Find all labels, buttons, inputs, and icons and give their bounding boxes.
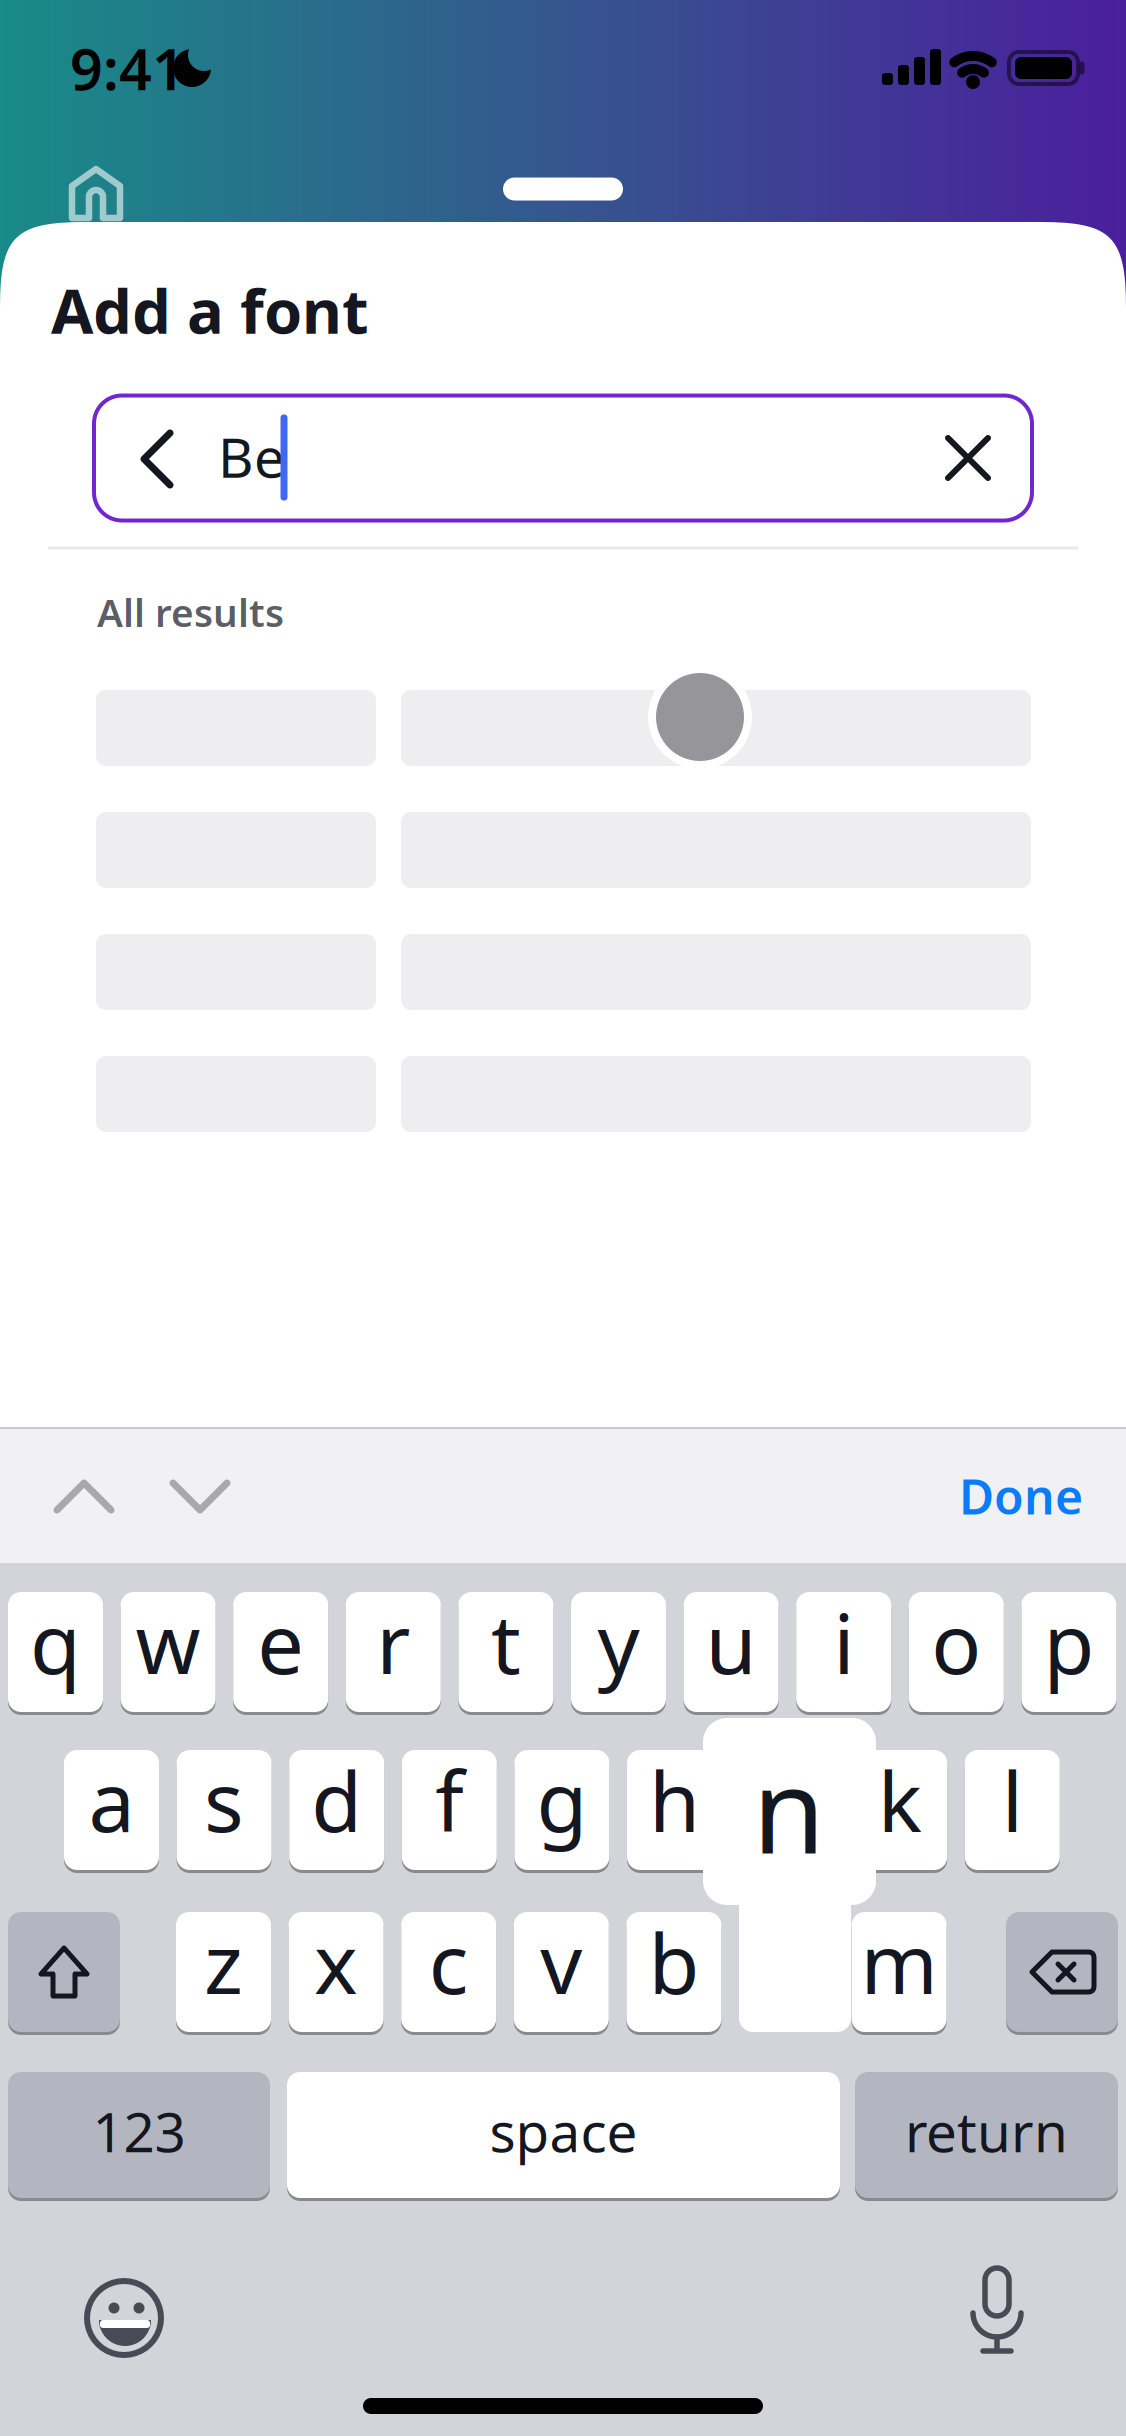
staticText: s <box>204 1745 244 1855</box>
button[interactable]: Done <box>959 1464 1083 1528</box>
button[interactable]: return <box>855 2072 1118 2198</box>
button[interactable]: Search fonts <box>94 395 1032 520</box>
staticText: e <box>257 1587 304 1697</box>
button[interactable]: y <box>571 1592 666 1712</box>
staticText: a <box>88 1745 134 1855</box>
staticText: p <box>1043 1587 1094 1697</box>
staticText: All results <box>97 586 284 638</box>
button[interactable]: u <box>684 1592 779 1712</box>
staticText: c <box>429 1907 469 2017</box>
button[interactable]: l <box>965 1750 1060 1870</box>
staticText: d <box>311 1745 362 1855</box>
button[interactable]: a <box>64 1750 159 1870</box>
button[interactable]: m <box>852 1912 947 2032</box>
staticText: z <box>204 1907 243 2017</box>
button[interactable]: Emoji <box>83 2277 165 2359</box>
button[interactable]: Clear search <box>944 434 992 482</box>
button[interactable]: k <box>852 1750 947 1870</box>
button[interactable]: j <box>740 1750 835 1870</box>
button[interactable]: e <box>233 1592 328 1712</box>
button[interactable]: o <box>909 1592 1004 1712</box>
button[interactable]: Back <box>140 429 174 489</box>
staticText: i <box>833 1587 854 1697</box>
button[interactable]: Previous field <box>53 1478 115 1514</box>
staticText: x <box>314 1907 358 2017</box>
button[interactable]: 123 <box>8 2072 270 2198</box>
button[interactable]: w <box>121 1592 216 1712</box>
staticText: j <box>777 1745 798 1855</box>
staticText: Be <box>218 420 285 493</box>
staticText: return <box>905 2095 1068 2167</box>
staticText: v <box>540 1907 582 2017</box>
staticText: o <box>931 1587 981 1697</box>
staticText: k <box>878 1745 922 1855</box>
button[interactable]: z <box>176 1912 271 2032</box>
staticText: t <box>491 1587 521 1697</box>
staticText: w <box>136 1587 201 1697</box>
button[interactable]: Home <box>69 167 123 221</box>
button[interactable]: v <box>514 1912 609 2032</box>
staticText: 123 <box>92 2095 185 2167</box>
button[interactable]: p <box>1021 1592 1116 1712</box>
staticText: y <box>597 1587 639 1697</box>
button[interactable]: b <box>626 1912 721 2032</box>
button[interactable]: n <box>703 1718 876 2032</box>
button[interactable]: x <box>289 1912 384 2032</box>
staticText: u <box>706 1587 757 1697</box>
button[interactable]: d <box>289 1750 384 1870</box>
staticText: h <box>649 1745 700 1855</box>
staticText: Add a font <box>51 269 369 351</box>
staticText: f <box>435 1745 463 1855</box>
button[interactable]: Delete <box>1006 1912 1118 2032</box>
staticText: r <box>376 1587 410 1697</box>
button[interactable]: t <box>458 1592 553 1712</box>
button[interactable]: h <box>627 1750 722 1870</box>
button[interactable]: Dictate <box>967 2265 1027 2355</box>
staticText: q <box>30 1587 81 1697</box>
staticText: n <box>752 1730 825 1886</box>
button[interactable]: r <box>346 1592 441 1712</box>
button[interactable]: f <box>402 1750 497 1870</box>
staticText: 9:41 <box>70 30 185 106</box>
staticText: space <box>489 2095 637 2167</box>
button[interactable]: space <box>287 2072 840 2198</box>
button[interactable]: g <box>514 1750 609 1870</box>
button[interactable]: i <box>796 1592 891 1712</box>
staticText: Done <box>959 1464 1083 1528</box>
button[interactable]: Shift <box>8 1912 120 2032</box>
button[interactable]: c <box>401 1912 496 2032</box>
button[interactable]: q <box>8 1592 103 1712</box>
staticText: l <box>1002 1745 1023 1855</box>
staticText: m <box>861 1907 938 2017</box>
staticText: g <box>536 1745 587 1855</box>
staticText: b <box>648 1907 699 2017</box>
button[interactable]: Next field <box>169 1478 231 1514</box>
button[interactable]: s <box>177 1750 272 1870</box>
